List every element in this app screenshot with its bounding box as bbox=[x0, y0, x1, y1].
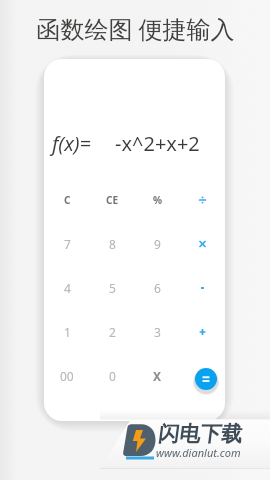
staticText: 闪电下载 bbox=[157, 421, 241, 447]
button[interactable]: 2 bbox=[90, 321, 135, 343]
button[interactable]: 8 bbox=[90, 233, 135, 255]
button[interactable] bbox=[180, 321, 225, 343]
staticText: 00 bbox=[60, 368, 74, 384]
button[interactable]: Equals bbox=[195, 368, 217, 390]
staticText: 3 bbox=[154, 324, 161, 340]
staticText: 7 bbox=[64, 236, 71, 252]
button[interactable]: 7 bbox=[44, 233, 90, 255]
button[interactable]: 00 bbox=[44, 365, 90, 387]
staticText: f(x)= bbox=[52, 130, 92, 157]
button[interactable]: C bbox=[44, 189, 90, 211]
staticText: CE bbox=[106, 193, 119, 207]
staticText: 8 bbox=[109, 236, 116, 252]
staticText: % bbox=[153, 193, 163, 207]
button[interactable] bbox=[180, 277, 225, 299]
button[interactable]: 0 bbox=[90, 365, 135, 387]
staticText: 6 bbox=[154, 280, 161, 296]
staticText: C bbox=[64, 193, 71, 207]
button[interactable]: % bbox=[135, 189, 180, 211]
button[interactable]: 1 bbox=[44, 321, 90, 343]
staticText: www.dianlut.com bbox=[156, 445, 241, 460]
button[interactable]: 6 bbox=[135, 277, 180, 299]
staticText: X bbox=[153, 368, 162, 384]
button[interactable] bbox=[180, 365, 225, 387]
button[interactable]: 3 bbox=[135, 321, 180, 343]
button[interactable]: CE bbox=[90, 189, 135, 211]
staticText: 0 bbox=[109, 368, 116, 384]
staticText: 4 bbox=[64, 280, 71, 296]
staticText: -x^2+x+2 bbox=[115, 130, 200, 157]
staticText: 9 bbox=[154, 236, 161, 252]
staticText: 5 bbox=[109, 280, 116, 296]
staticText: 函数绘图 便捷输入 bbox=[36, 12, 235, 45]
button[interactable]: 9 bbox=[135, 233, 180, 255]
button[interactable]: 4 bbox=[44, 277, 90, 299]
button[interactable]: X bbox=[135, 365, 180, 387]
button[interactable] bbox=[180, 189, 225, 211]
button[interactable] bbox=[180, 233, 225, 255]
button[interactable]: 5 bbox=[90, 277, 135, 299]
staticText: 1 bbox=[64, 324, 71, 340]
staticText: 2 bbox=[109, 324, 116, 340]
